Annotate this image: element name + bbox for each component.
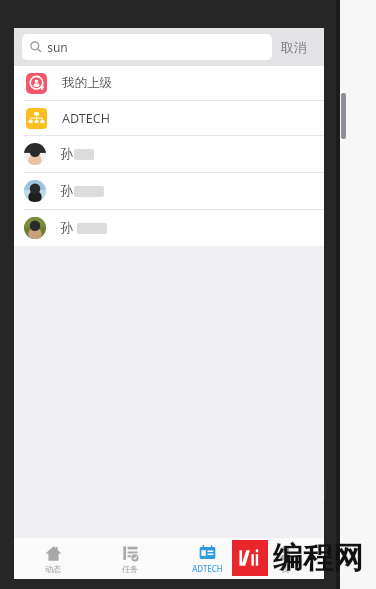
button[interactable]: sun <box>22 34 272 60</box>
button[interactable]: 我 <box>246 538 324 579</box>
staticText: sun <box>47 39 68 55</box>
button[interactable]: 孙 <box>14 136 324 172</box>
button[interactable]: 任务 <box>91 538 168 579</box>
button[interactable]: 取消 <box>272 35 316 59</box>
button[interactable]: 孙 <box>14 173 324 209</box>
staticText: 孙 <box>60 220 73 236</box>
button[interactable]: 孙 <box>14 210 324 246</box>
staticText: 我的上级 <box>62 75 112 91</box>
staticText: 我 <box>281 564 289 574</box>
button[interactable]: 动态 <box>14 538 91 579</box>
staticText: 任务 <box>122 564 138 574</box>
staticText: 编程网 <box>273 539 363 577</box>
button[interactable]: 我的上级 <box>14 66 324 100</box>
button[interactable]: ADTECH <box>168 538 246 579</box>
staticText: 动态 <box>45 564 61 574</box>
staticText: 孙 <box>60 146 73 162</box>
staticText: 取消 <box>281 39 307 55</box>
staticText: ADTECH <box>62 110 110 127</box>
staticText: 孙 <box>60 183 73 199</box>
button[interactable]: ADTECH <box>14 101 324 135</box>
staticText: ADTECH <box>192 563 223 574</box>
